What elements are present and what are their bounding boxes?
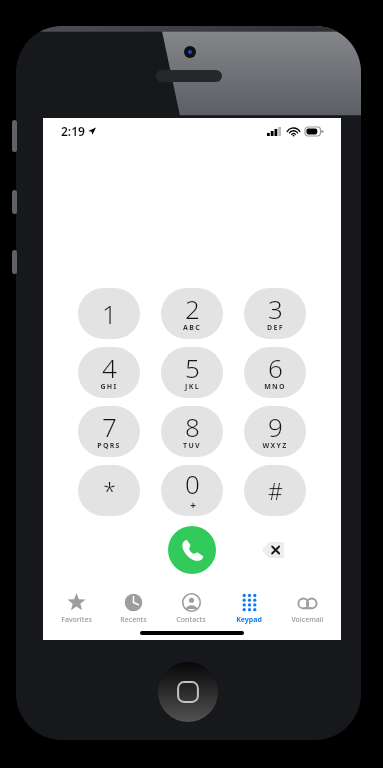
staticText: GHI [100,382,118,392]
button[interactable]: Call [168,526,216,574]
staticText: WXYZ [262,441,288,451]
button[interactable]: Keypad [220,590,278,628]
staticText: 5 [185,350,200,385]
staticText: 3 [268,291,283,326]
button[interactable]: # [244,465,306,516]
button[interactable]: * [78,465,140,516]
staticText: Keypad [236,615,262,625]
staticText: 8 [185,409,200,444]
staticText: Contacts [176,615,206,625]
staticText: MNO [264,382,286,392]
staticText: 6 [268,350,283,385]
staticText: Recents [120,615,147,625]
staticText: TUV [183,441,201,451]
staticText: DEF [267,323,284,333]
button[interactable]: 6 [244,347,306,398]
button[interactable]: Contacts [162,590,220,628]
button[interactable]: 9 [244,406,306,457]
button[interactable]: 2 [161,288,223,339]
staticText: PQRS [97,441,121,451]
staticText: * [103,475,116,506]
staticText: 7 [102,409,117,444]
button[interactable]: 1 [78,288,140,339]
staticText: Favorites [61,615,92,625]
staticText: ABC [183,323,201,333]
button[interactable]: 5 [161,347,223,398]
staticText: JKL [185,382,200,392]
button[interactable]: 0 [161,465,223,516]
button[interactable]: 8 [161,406,223,457]
staticText: 0 [185,466,200,501]
staticText: 2:19 [61,123,85,139]
button[interactable]: Recents [105,590,162,628]
button[interactable]: Voicemail [278,590,336,628]
staticText: 1 [102,296,117,331]
staticText: # [268,475,283,506]
button[interactable]: 7 [78,406,140,457]
button[interactable]: 4 [78,347,140,398]
button[interactable]: Favorites [48,590,105,628]
staticText: 4 [102,350,117,385]
staticText: + [190,498,196,512]
button[interactable]: 3 [244,288,306,339]
staticText: 9 [268,409,283,444]
button[interactable]: Delete [256,533,290,567]
staticText: Voicemail [291,615,324,625]
staticText: 2 [185,291,200,326]
